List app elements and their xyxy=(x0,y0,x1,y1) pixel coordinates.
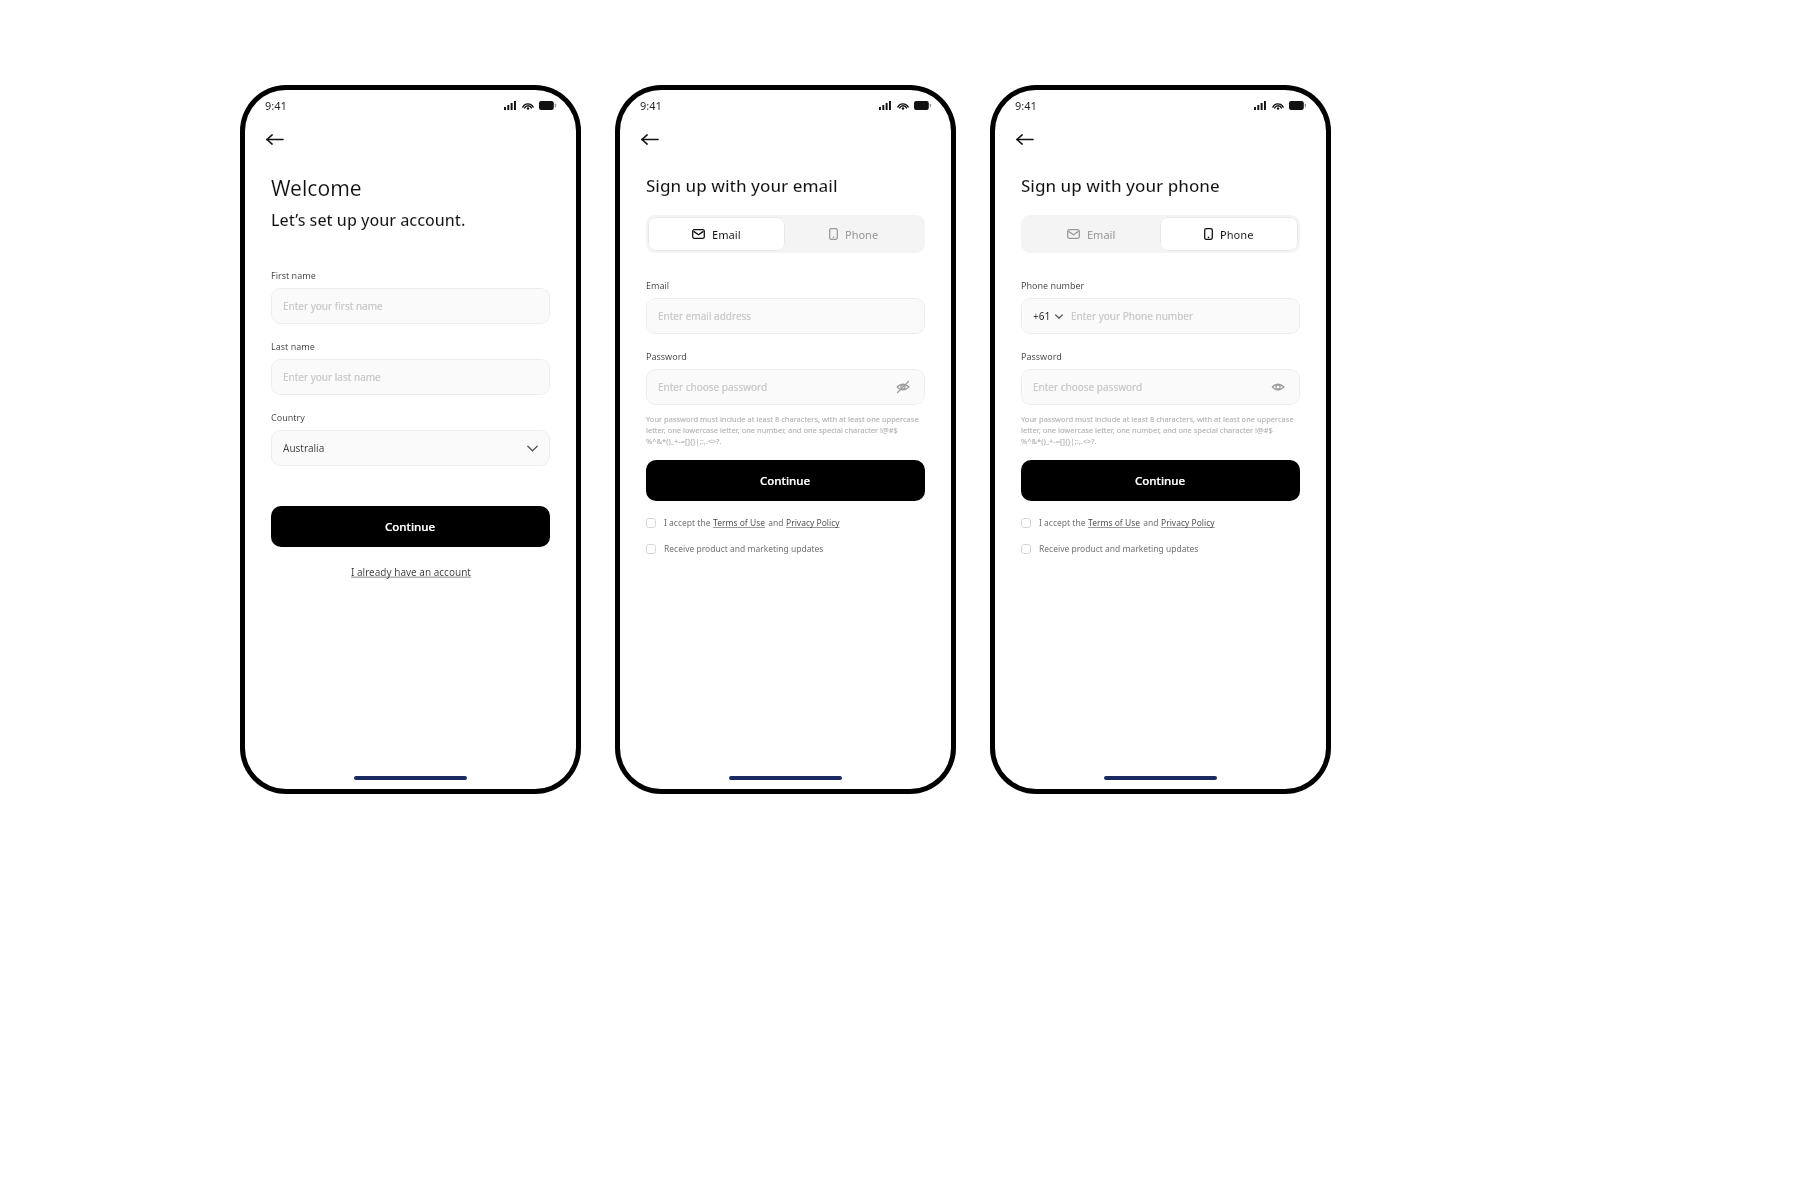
staticText: First name xyxy=(271,269,316,281)
button[interactable]: +61 xyxy=(1021,298,1300,334)
staticText: 9:41 xyxy=(265,98,287,113)
staticText: Privacy Policy xyxy=(1161,517,1215,529)
button[interactable]: Phone xyxy=(1160,217,1298,251)
button[interactable]: I accept the xyxy=(646,513,925,533)
button[interactable]: Back xyxy=(1011,126,1037,152)
button[interactable]: Australia xyxy=(271,430,550,466)
staticText: Phone xyxy=(845,227,879,242)
staticText: Phone xyxy=(1220,227,1254,242)
button[interactable]: Email xyxy=(648,217,785,251)
staticText: Welcome xyxy=(271,174,362,203)
staticText: Continue xyxy=(385,519,436,535)
staticText: Password xyxy=(1021,350,1062,362)
staticText: Phone number xyxy=(1021,279,1085,291)
staticText: and xyxy=(766,517,786,529)
staticText: Receive product and marketing updates xyxy=(664,543,824,555)
staticText: Let’s set up your account. xyxy=(271,209,466,231)
staticText: I accept the xyxy=(1039,517,1088,529)
staticText: Your password must include at least 8 ch… xyxy=(646,414,925,446)
staticText: Country xyxy=(271,411,305,423)
staticText: and xyxy=(1141,517,1161,529)
button[interactable]: Continue xyxy=(271,506,550,547)
button[interactable]: Enter email address xyxy=(646,298,925,334)
staticText: Continue xyxy=(760,473,811,489)
staticText: Privacy Policy xyxy=(786,517,840,529)
button[interactable]: Enter your last name xyxy=(271,359,550,395)
button[interactable]: Toggle password visibility xyxy=(893,377,913,397)
staticText: Your password must include at least 8 ch… xyxy=(1021,414,1300,446)
staticText: Last name xyxy=(271,340,315,352)
staticText: Australia xyxy=(283,441,527,455)
staticText: Enter your last name xyxy=(283,370,538,384)
button[interactable]: Continue xyxy=(1021,460,1300,501)
button[interactable]: Toggle password visibility xyxy=(1268,377,1288,397)
button[interactable]: Enter choose password xyxy=(1021,369,1300,405)
staticText: Password xyxy=(646,350,687,362)
staticText: 9:41 xyxy=(640,98,662,113)
button[interactable]: Enter choose password xyxy=(646,369,925,405)
button[interactable]: Back xyxy=(636,126,662,152)
staticText: Enter your Phone number xyxy=(1071,309,1288,323)
button[interactable]: I already have an account xyxy=(351,565,471,579)
staticText: Terms of Use xyxy=(1088,517,1141,529)
button[interactable]: Continue xyxy=(646,460,925,501)
button[interactable]: I accept the xyxy=(1021,513,1300,533)
staticText: Email xyxy=(712,227,741,242)
staticText: Enter choose password xyxy=(658,380,893,394)
staticText: +61 xyxy=(1033,309,1051,323)
staticText: I already have an account xyxy=(351,565,471,579)
staticText: 9:41 xyxy=(1015,98,1037,113)
staticText: Enter your first name xyxy=(283,299,538,313)
staticText: Sign up with your email xyxy=(646,174,838,197)
staticText: Continue xyxy=(1135,473,1186,489)
button[interactable]: Phone xyxy=(785,217,923,251)
button[interactable]: Email xyxy=(1023,217,1160,251)
button[interactable]: Enter your first name xyxy=(271,288,550,324)
button[interactable]: Back xyxy=(261,126,287,152)
staticText: Receive product and marketing updates xyxy=(1039,543,1199,555)
staticText: I accept the xyxy=(664,517,713,529)
staticText: Enter email address xyxy=(658,309,913,323)
staticText: Terms of Use xyxy=(713,517,766,529)
button[interactable]: Receive product and marketing updates xyxy=(646,539,925,559)
staticText: Email xyxy=(646,279,670,291)
staticText: Enter choose password xyxy=(1033,380,1268,394)
button[interactable]: Receive product and marketing updates xyxy=(1021,539,1300,559)
staticText: Email xyxy=(1087,227,1116,242)
staticText: Sign up with your phone xyxy=(1021,174,1220,197)
